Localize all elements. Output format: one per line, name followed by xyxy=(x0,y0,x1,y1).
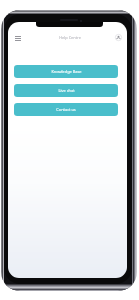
button[interactable]: Knowledge Base xyxy=(14,65,118,78)
staticText: Help Centre xyxy=(59,35,81,40)
staticText: Knowledge Base xyxy=(51,69,82,74)
staticText: Contact us xyxy=(56,107,76,112)
staticText: Live chat xyxy=(58,88,75,93)
button[interactable]: Profile xyxy=(113,32,124,43)
button[interactable]: Contact us xyxy=(14,103,118,116)
button[interactable]: Live chat xyxy=(14,84,118,97)
button[interactable]: Menu xyxy=(12,33,22,43)
